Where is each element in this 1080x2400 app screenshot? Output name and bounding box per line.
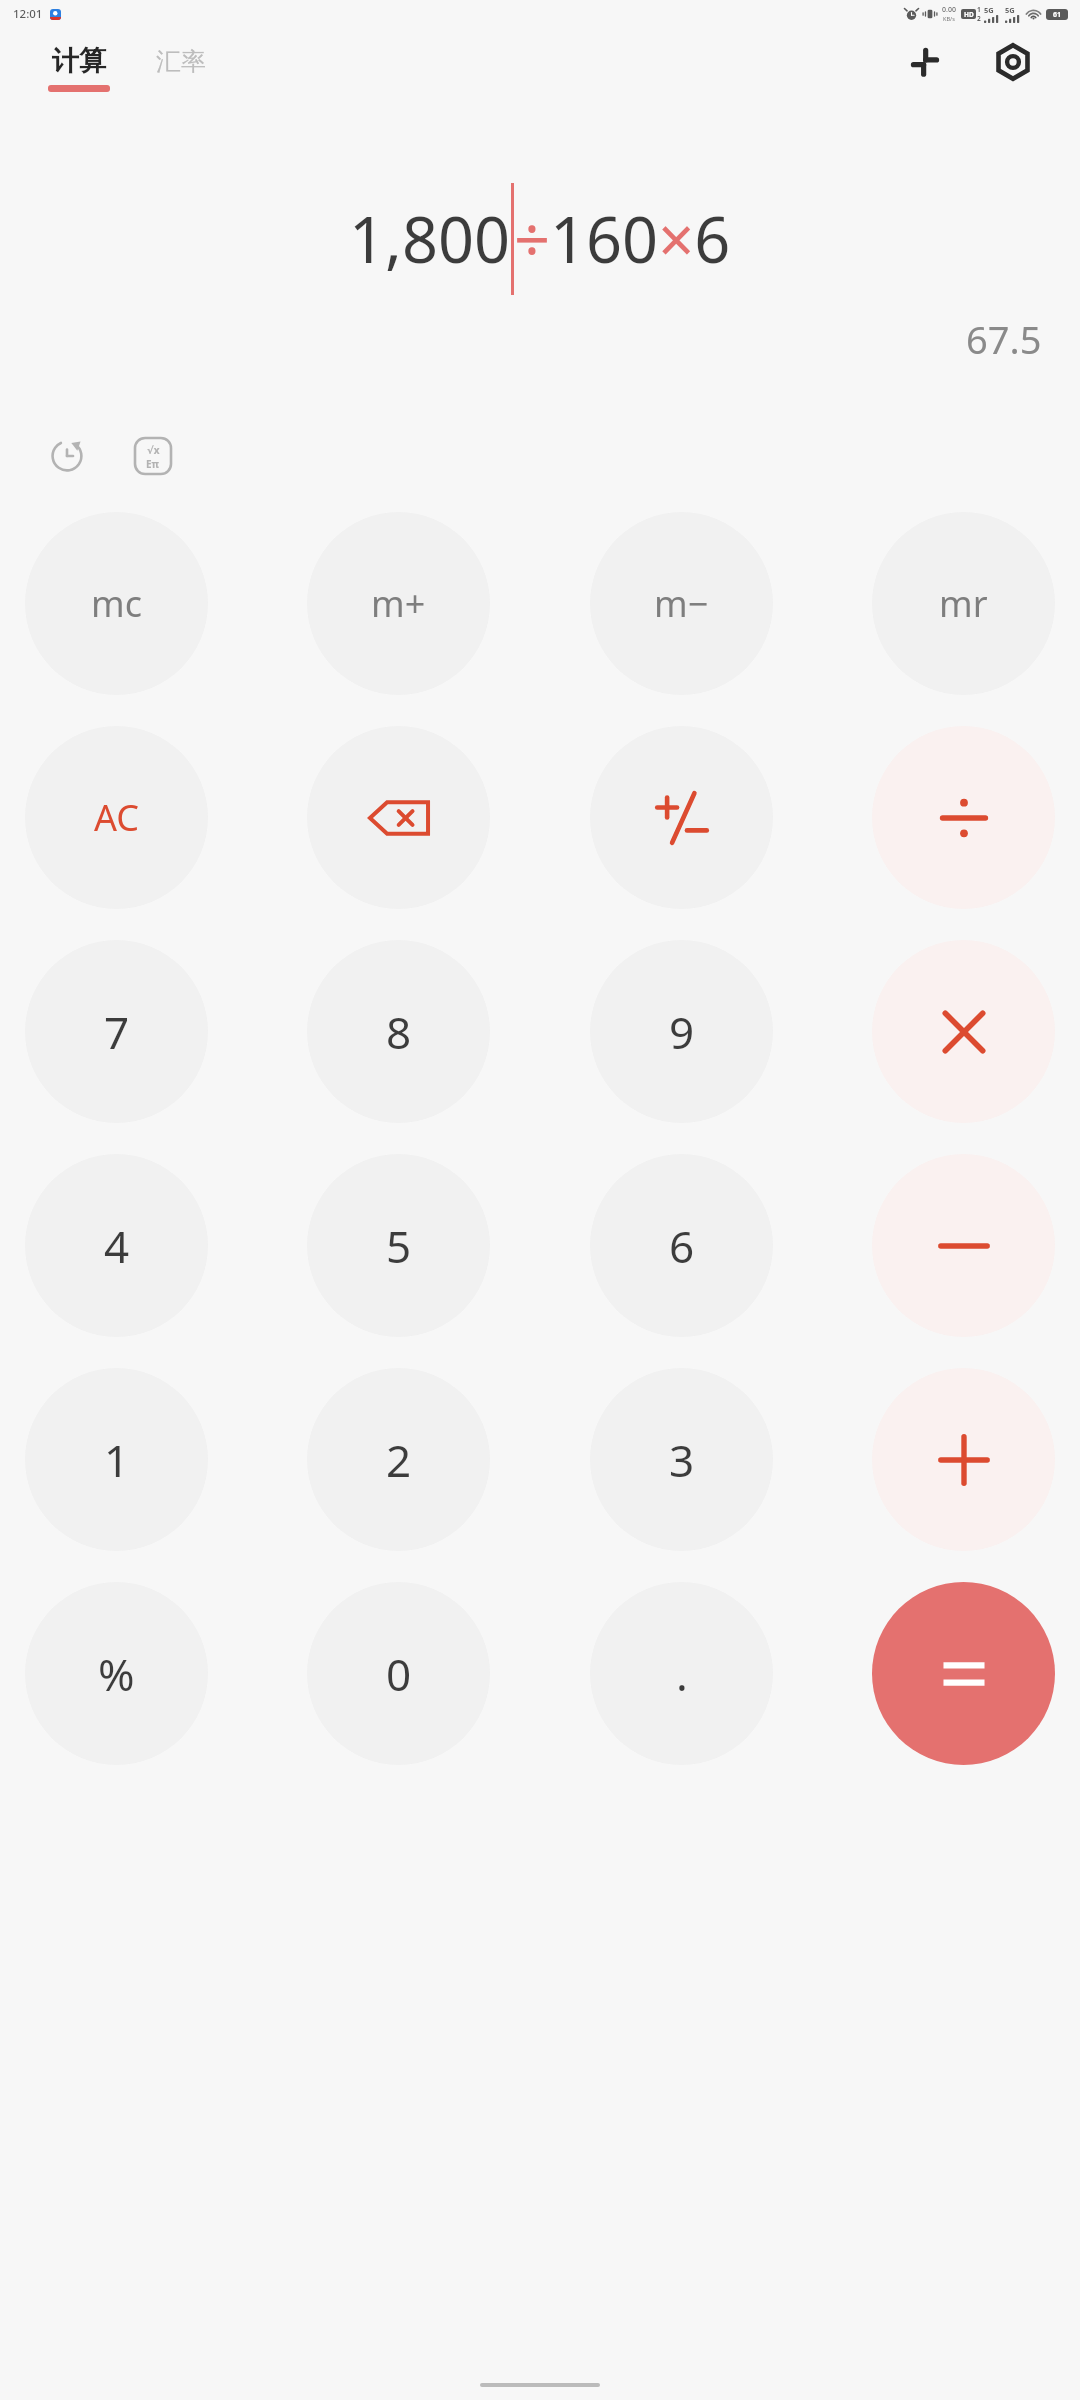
staticText: 2 [977, 14, 981, 23]
staticText: ÷160×6 [514, 196, 731, 282]
staticText: 1,800 [349, 196, 511, 282]
button[interactable]: mc [25, 512, 208, 695]
staticText: mr [939, 579, 988, 628]
button[interactable]: 6 [590, 1154, 773, 1337]
staticText: 0.00 [942, 5, 956, 15]
button[interactable]: m− [590, 512, 773, 695]
staticText: 5 [386, 1216, 412, 1276]
staticText: √x [147, 443, 160, 457]
staticText: 2 [386, 1430, 412, 1490]
button[interactable]: × [872, 940, 1055, 1123]
staticText: % [98, 1644, 135, 1704]
button[interactable]: AC [25, 726, 208, 909]
button[interactable]: Floating window [898, 35, 952, 89]
button[interactable]: % [25, 1582, 208, 1765]
button[interactable]: 3 [590, 1368, 773, 1551]
button[interactable]: + [872, 1368, 1055, 1551]
staticText: 0 [386, 1644, 412, 1704]
staticText: 1 [104, 1430, 130, 1490]
staticText: 5G [984, 5, 994, 15]
staticText: 5G [1005, 5, 1015, 15]
button[interactable]: +/− [590, 726, 773, 909]
button[interactable]: 2 [307, 1368, 490, 1551]
staticText: HD [964, 10, 974, 19]
staticText: 12:01 [13, 6, 43, 22]
button[interactable]: . [590, 1582, 773, 1765]
staticText: mc [91, 579, 142, 628]
staticText: 汇率 [156, 46, 206, 77]
button[interactable]: Settings [986, 35, 1040, 89]
button[interactable]: 汇率 [154, 53, 208, 84]
button[interactable]: 9 [590, 940, 773, 1123]
button[interactable]: = [872, 1582, 1055, 1765]
button[interactable]: ÷ [872, 726, 1055, 909]
staticText: . [676, 1644, 688, 1704]
button[interactable]: − [872, 1154, 1055, 1337]
staticText: 61 [1053, 10, 1062, 20]
staticText: AC [94, 793, 140, 842]
button[interactable]: 计算 [46, 44, 112, 92]
button[interactable]: History [38, 427, 96, 485]
button[interactable]: 4 [25, 1154, 208, 1337]
button[interactable]: 0 [307, 1582, 490, 1765]
button[interactable]: mr [872, 512, 1055, 695]
staticText: KB/s [943, 15, 955, 23]
staticText: 4 [104, 1216, 130, 1276]
staticText: 3 [669, 1430, 695, 1490]
staticText: 67.5 [966, 313, 1042, 365]
button[interactable]: ⌫ [307, 726, 490, 909]
staticText: 6 [669, 1216, 695, 1276]
staticText: 1 [977, 5, 981, 14]
button[interactable]: 5 [307, 1154, 490, 1337]
staticText: 9 [669, 1002, 695, 1062]
button[interactable]: Scientific mode [124, 427, 182, 485]
staticText: 计算 [52, 44, 106, 78]
button[interactable]: 7 [25, 940, 208, 1123]
button[interactable]: m+ [307, 512, 490, 695]
button[interactable]: 8 [307, 940, 490, 1123]
staticText: 8 [386, 1002, 412, 1062]
staticText: Eπ [146, 457, 160, 469]
staticText: m− [654, 579, 709, 628]
staticText: 7 [104, 1002, 130, 1062]
staticText: m+ [371, 579, 426, 628]
button[interactable]: 1 [25, 1368, 208, 1551]
